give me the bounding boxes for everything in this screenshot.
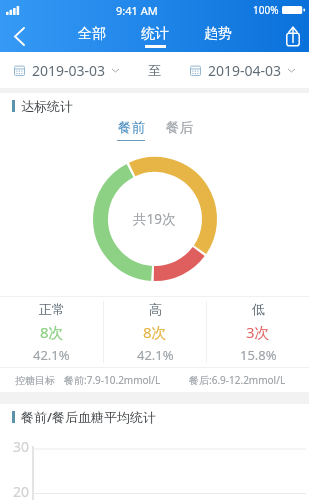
- staticText: 餐后:6.9-12.2mmol/L: [189, 373, 286, 387]
- button[interactable]: 2019-04-03: [161, 52, 309, 88]
- staticText: 9:41 AM: [116, 3, 158, 18]
- staticText: 趋势: [204, 25, 232, 43]
- button[interactable]: 高: [104, 297, 206, 367]
- button[interactable]: Share: [276, 20, 309, 52]
- staticText: 8次: [143, 322, 167, 342]
- staticText: 控糖目标: [15, 374, 55, 387]
- button[interactable]: 统计: [141, 20, 169, 52]
- button[interactable]: 全部: [78, 20, 106, 52]
- button[interactable]: 趋势: [204, 20, 232, 52]
- staticText: 高: [149, 301, 162, 317]
- staticText: 正常: [39, 301, 65, 317]
- staticText: 达标统计: [21, 98, 73, 114]
- staticText: 42.1%: [137, 346, 174, 364]
- staticText: 2019-03-03: [32, 61, 106, 80]
- staticText: 100%: [253, 3, 279, 17]
- staticText: 30: [13, 437, 30, 456]
- staticText: 餐前: [118, 119, 145, 136]
- button[interactable]: 正常: [0, 297, 103, 367]
- staticText: 低: [252, 301, 265, 317]
- staticText: 餐后: [166, 119, 193, 136]
- staticText: 全部: [78, 25, 106, 43]
- staticText: 2019-04-03: [208, 61, 282, 80]
- staticText: 至: [148, 62, 161, 78]
- staticText: 3次: [246, 322, 270, 342]
- staticText: 共19次: [133, 210, 176, 228]
- staticText: 42.1%: [33, 346, 70, 364]
- staticText: 20: [13, 482, 30, 500]
- button[interactable]: 低: [207, 297, 309, 367]
- staticText: 餐前:7.9-10.2mmol/L: [64, 373, 161, 387]
- staticText: 统计: [141, 25, 169, 43]
- staticText: 8次: [40, 322, 64, 342]
- button[interactable]: Back: [0, 20, 38, 52]
- button[interactable]: 餐前: [117, 119, 145, 141]
- button[interactable]: 餐后: [165, 119, 193, 141]
- staticText: 餐前/餐后血糖平均统计: [21, 408, 157, 426]
- staticText: 15.8%: [240, 346, 277, 364]
- button[interactable]: 2019-03-03: [0, 52, 148, 88]
